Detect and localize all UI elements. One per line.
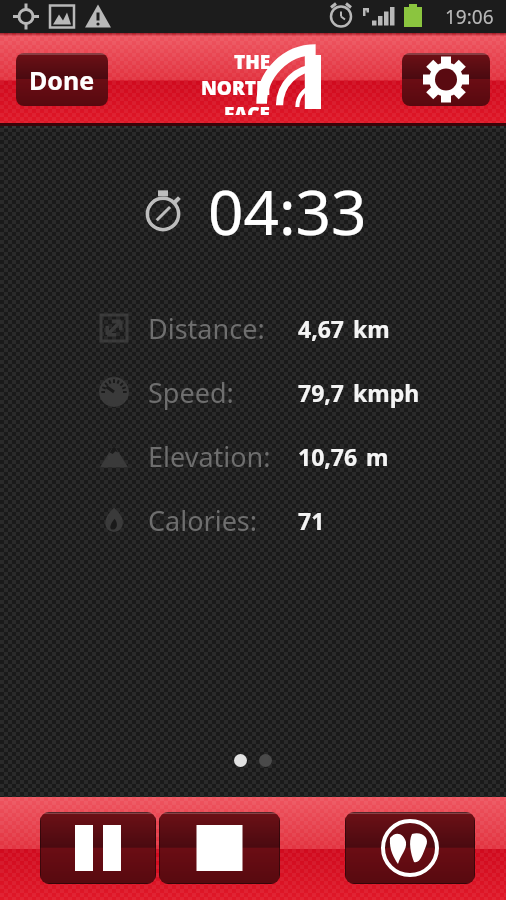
staticText: THE [234,49,271,75]
staticText: Calories: [148,502,258,539]
staticText: Done [29,63,95,97]
staticText: km [353,313,390,344]
button[interactable]: Stop [159,812,280,884]
staticText: FACE [224,101,271,115]
staticText: NORTH [201,75,271,101]
button[interactable]: Pause [40,812,156,884]
staticText: m [366,441,389,472]
staticText: Distance: [148,310,265,347]
staticText: kmph [353,377,420,408]
staticText: Speed: [148,374,234,411]
staticText: 79,7 [298,377,345,408]
staticText: 19:06 [445,4,494,30]
staticText: 4,67 [298,313,345,344]
button[interactable]: Done [16,53,108,106]
staticText: 04:33 [208,169,367,253]
staticText: 71 [298,505,325,536]
staticText: Elevation: [148,438,271,475]
button[interactable]: Settings [402,53,490,106]
button[interactable]: Map [345,812,475,884]
staticText: 10,76 [298,441,358,472]
